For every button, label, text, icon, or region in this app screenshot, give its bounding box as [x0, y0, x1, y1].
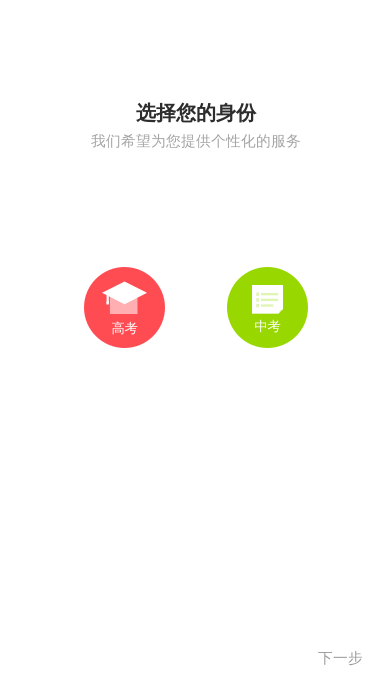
staticText: 高考 — [111, 320, 137, 336]
staticText: 下一步 — [318, 649, 363, 667]
button[interactable]: 中考 — [227, 267, 308, 348]
staticText: 选择您的身份 — [136, 101, 256, 125]
button[interactable]: 高考 — [84, 267, 165, 348]
staticText: 中考 — [254, 318, 280, 334]
button[interactable]: 下一步 — [306, 641, 375, 675]
staticText: 我们希望为您提供个性化的服务 — [91, 132, 301, 150]
